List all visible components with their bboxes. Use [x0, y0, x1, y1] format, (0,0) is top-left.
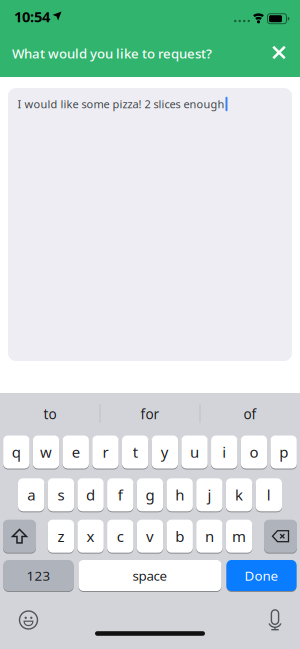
- staticText: to: [43, 405, 56, 423]
- button[interactable]: l: [256, 478, 282, 512]
- staticText: I would like some pizza! 2 slices enough: [17, 96, 224, 111]
- staticText: j: [207, 485, 211, 505]
- button[interactable]: [13, 605, 43, 635]
- staticText: of: [243, 405, 256, 423]
- staticText: f: [118, 485, 123, 505]
- button[interactable]: [265, 38, 293, 66]
- button[interactable]: j: [196, 478, 223, 512]
- button[interactable]: g: [137, 478, 163, 512]
- button[interactable]: [264, 519, 297, 553]
- staticText: s: [57, 485, 64, 505]
- button[interactable]: a: [18, 478, 44, 512]
- button[interactable]: e: [63, 435, 89, 469]
- button[interactable]: p: [270, 435, 297, 469]
- button[interactable]: [3, 519, 36, 553]
- staticText: space: [132, 566, 167, 585]
- button[interactable]: s: [48, 478, 74, 512]
- staticText: z: [57, 526, 64, 546]
- staticText: l: [267, 485, 271, 505]
- button[interactable]: of: [202, 399, 298, 429]
- staticText: e: [72, 442, 80, 462]
- staticText: v: [146, 526, 154, 546]
- staticText: for: [140, 405, 159, 423]
- staticText: w: [40, 442, 52, 462]
- staticText: c: [117, 526, 124, 546]
- staticText: k: [235, 485, 243, 505]
- staticText: What would you like to request?: [12, 44, 212, 62]
- staticText: a: [27, 485, 35, 505]
- staticText: i: [222, 442, 226, 462]
- staticText: r: [102, 442, 108, 462]
- staticText: 123: [26, 566, 50, 585]
- button[interactable]: o: [241, 435, 267, 469]
- staticText: b: [175, 526, 184, 546]
- button[interactable]: w: [33, 435, 59, 469]
- staticText: g: [145, 485, 154, 505]
- button[interactable]: for: [102, 399, 198, 429]
- button[interactable]: i: [211, 435, 237, 469]
- staticText: d: [86, 485, 95, 505]
- staticText: u: [190, 442, 199, 462]
- staticText: q: [12, 442, 21, 462]
- button[interactable]: v: [137, 519, 163, 553]
- button[interactable]: r: [92, 435, 119, 469]
- button[interactable]: [8, 88, 292, 361]
- staticText: t: [133, 442, 138, 462]
- staticText: Done: [244, 566, 278, 585]
- button[interactable]: z: [48, 519, 74, 553]
- button[interactable]: t: [122, 435, 148, 469]
- button[interactable]: y: [152, 435, 178, 469]
- staticText: m: [232, 526, 246, 546]
- button[interactable]: space: [78, 559, 221, 591]
- button[interactable]: u: [181, 435, 208, 469]
- button[interactable]: k: [226, 478, 252, 512]
- button[interactable]: Done: [226, 559, 296, 591]
- button[interactable]: x: [77, 519, 104, 553]
- staticText: o: [249, 442, 258, 462]
- button[interactable]: f: [107, 478, 133, 512]
- button[interactable]: n: [196, 519, 223, 553]
- staticText: x: [87, 526, 95, 546]
- button[interactable]: d: [77, 478, 104, 512]
- button[interactable]: m: [226, 519, 252, 553]
- staticText: p: [279, 442, 288, 462]
- button[interactable]: h: [166, 478, 193, 512]
- staticText: h: [175, 485, 184, 505]
- button[interactable]: b: [166, 519, 193, 553]
- staticText: n: [205, 526, 214, 546]
- button[interactable]: [260, 605, 290, 635]
- button[interactable]: q: [3, 435, 30, 469]
- button[interactable]: to: [2, 399, 98, 429]
- button[interactable]: c: [107, 519, 133, 553]
- staticText: y: [161, 442, 169, 462]
- button[interactable]: 123: [3, 559, 73, 591]
- staticText: 10:54: [14, 6, 50, 26]
